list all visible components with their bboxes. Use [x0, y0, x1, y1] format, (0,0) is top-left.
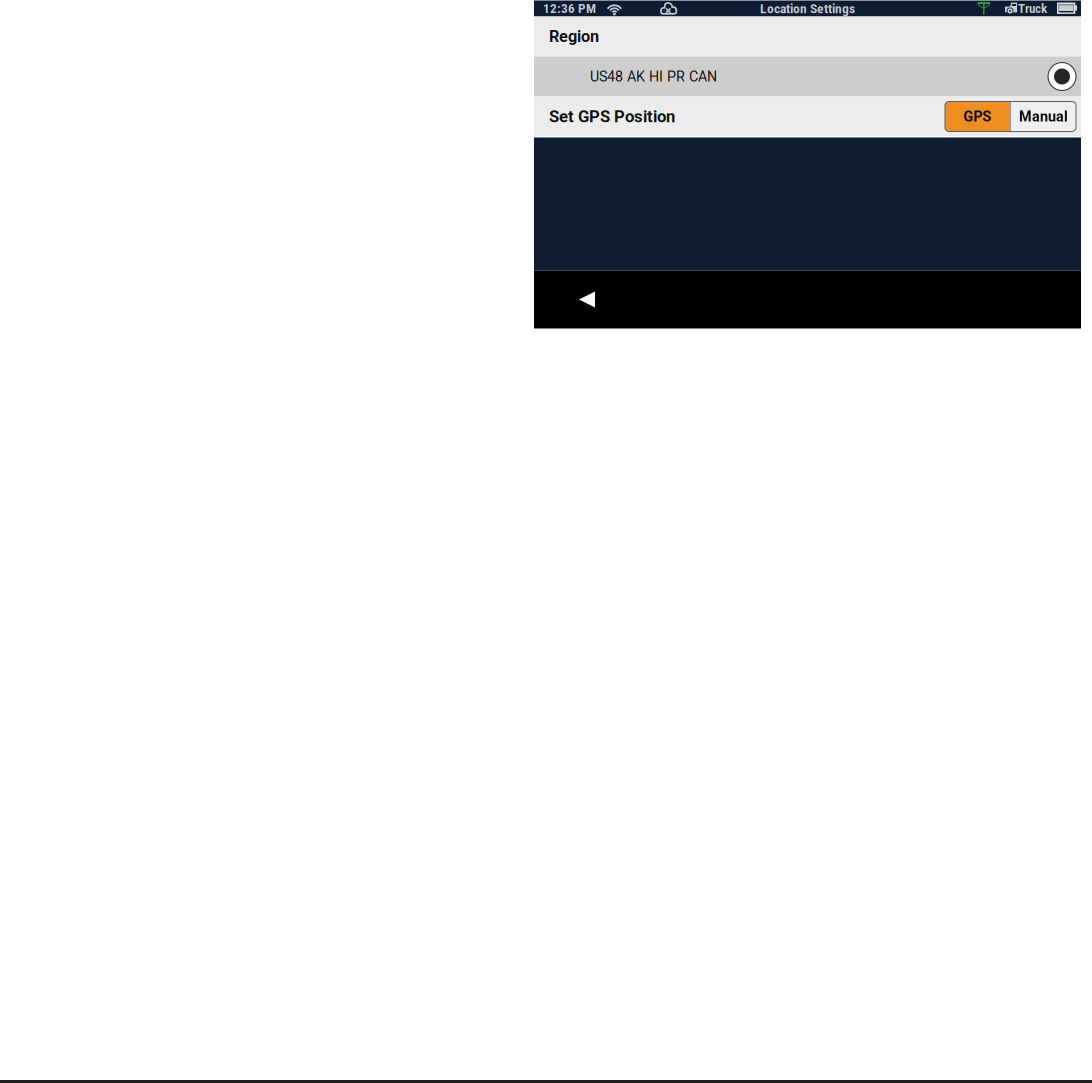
- button[interactable]: Manual: [1011, 101, 1076, 131]
- staticText: Location Settings: [760, 0, 855, 16]
- staticText: Truck: [1018, 1, 1047, 16]
- staticText: Region: [549, 27, 599, 46]
- button[interactable]: GPS: [945, 101, 1010, 131]
- staticText: US48 AK HI PR CAN: [590, 68, 717, 85]
- staticText: GPS: [963, 108, 991, 125]
- button[interactable]: Back: [534, 270, 617, 328]
- button[interactable]: US48 AK HI PR CAN: [534, 56, 1081, 96]
- staticText: 12:36 PM: [543, 1, 596, 16]
- staticText: Manual: [1019, 108, 1068, 125]
- staticText: Set GPS Position: [549, 107, 675, 126]
